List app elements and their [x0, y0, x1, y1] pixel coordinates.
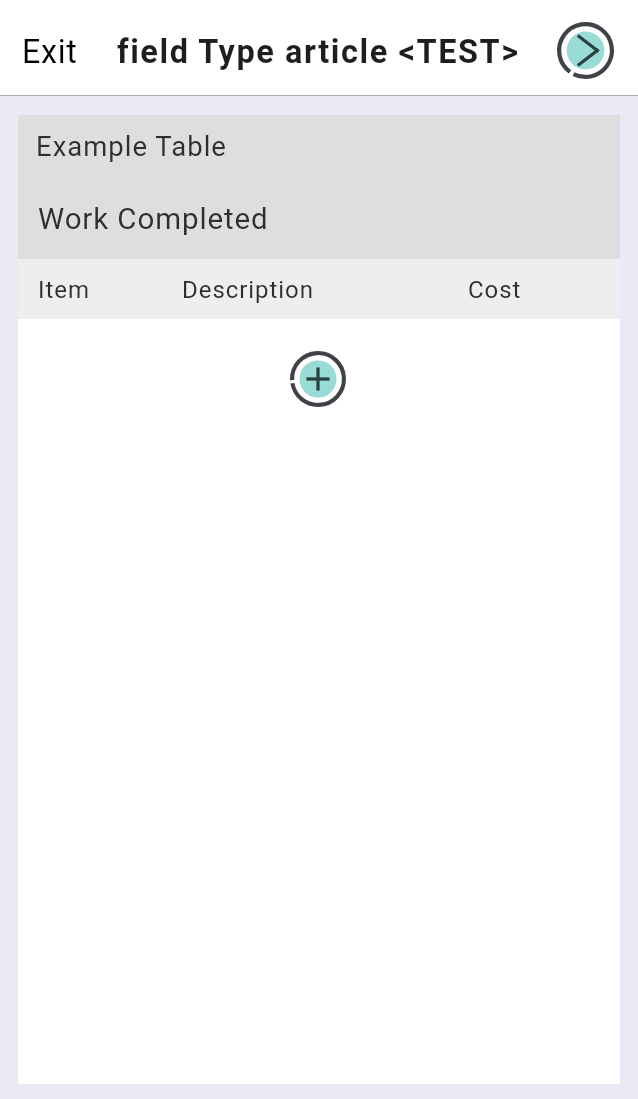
button[interactable]: Exit — [8, 27, 92, 77]
staticText: Description — [182, 276, 314, 304]
staticText: Item — [38, 276, 90, 304]
button[interactable]: Next — [557, 22, 614, 79]
staticText: field Type article <TEST> — [117, 33, 520, 71]
staticText: Exit — [22, 33, 78, 71]
staticText: Example Table — [36, 130, 227, 162]
staticText: Cost — [468, 276, 522, 304]
button[interactable]: Add row — [290, 351, 346, 407]
staticText: Work Completed — [38, 202, 269, 237]
